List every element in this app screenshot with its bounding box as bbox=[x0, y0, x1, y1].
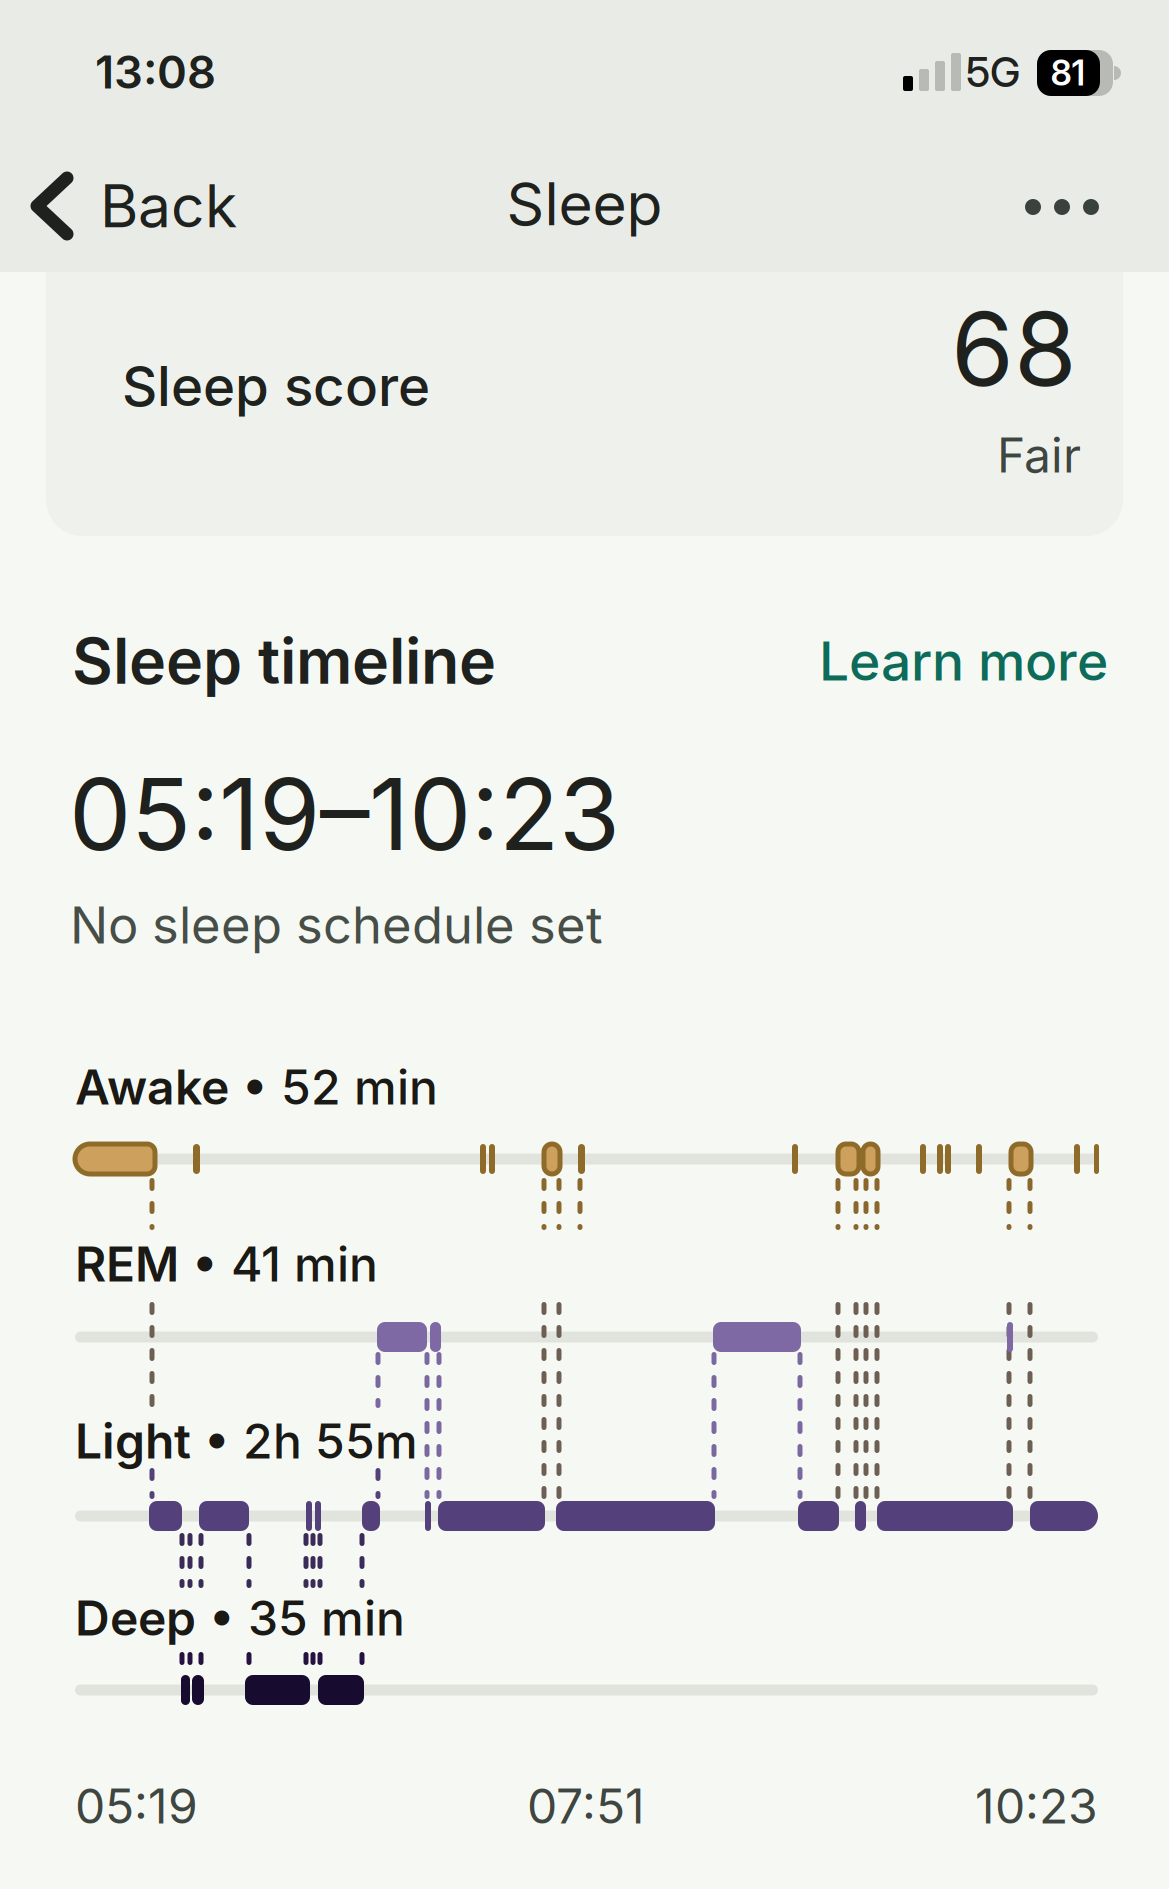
staticText: 5G bbox=[966, 48, 1020, 96]
button[interactable] bbox=[1025, 199, 1099, 215]
staticText: 68 bbox=[951, 289, 1077, 409]
staticText: Sleep score bbox=[122, 354, 430, 418]
staticText: Learn more bbox=[819, 629, 1108, 692]
staticText: Sleep bbox=[506, 169, 662, 239]
staticText: 07:51 bbox=[527, 1778, 645, 1834]
staticText: 81 bbox=[1050, 53, 1085, 93]
staticText: 10:23 bbox=[975, 1778, 1098, 1834]
staticText: 05:19–10:23 bbox=[69, 756, 620, 872]
staticText: 05:19 bbox=[75, 1778, 198, 1834]
staticText: Awake • 52 min bbox=[75, 1059, 438, 1115]
staticText: No sleep schedule set bbox=[70, 895, 603, 955]
staticText: Fair bbox=[997, 427, 1081, 483]
staticText: Back bbox=[100, 171, 237, 241]
button[interactable]: Back bbox=[37, 171, 237, 241]
staticText: 13:08 bbox=[95, 45, 216, 99]
button[interactable] bbox=[46, 236, 1123, 536]
button[interactable]: Learn more bbox=[819, 629, 1108, 692]
staticText: REM • 41 min bbox=[75, 1236, 378, 1292]
staticText: Deep • 35 min bbox=[75, 1590, 405, 1646]
staticText: Sleep timeline bbox=[72, 624, 496, 698]
staticText: Light • 2h 55m bbox=[75, 1413, 418, 1469]
